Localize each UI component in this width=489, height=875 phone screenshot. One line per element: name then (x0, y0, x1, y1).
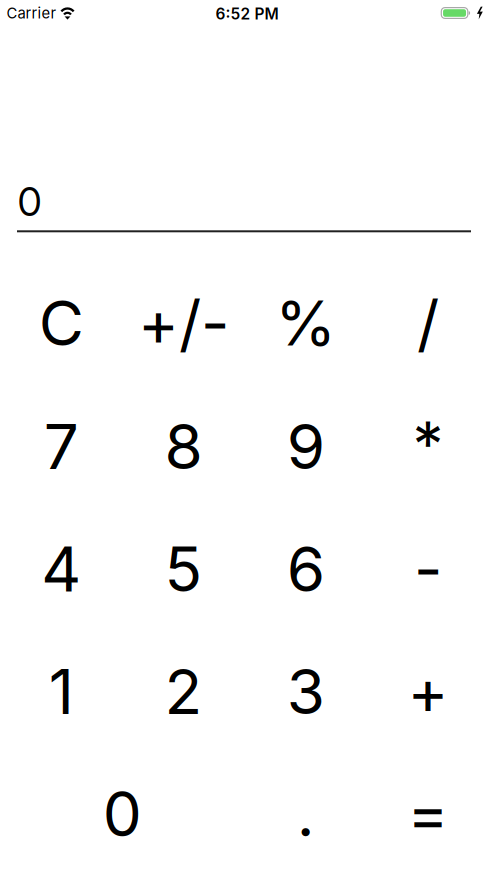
button[interactable]: 6 (244, 508, 367, 630)
button[interactable]: % (244, 262, 367, 384)
staticText: * (412, 406, 443, 481)
staticText: 0 (17, 178, 41, 226)
button[interactable]: . (244, 753, 367, 875)
staticText: 1 (49, 654, 74, 729)
staticText: - (414, 532, 442, 606)
staticText: . (297, 776, 315, 851)
button[interactable]: +/- (122, 262, 244, 384)
button[interactable]: 5 (122, 508, 244, 630)
button[interactable]: 2 (122, 630, 244, 753)
button[interactable]: - (367, 508, 489, 630)
button[interactable]: 3 (244, 630, 367, 753)
button[interactable]: 7 (0, 385, 122, 508)
staticText: 2 (164, 654, 202, 729)
staticText: 5 (164, 532, 202, 606)
button[interactable]: 1 (0, 630, 122, 753)
button[interactable]: / (367, 262, 489, 384)
staticText: 9 (287, 409, 325, 484)
button[interactable]: 8 (122, 385, 244, 508)
button[interactable]: = (367, 753, 489, 875)
staticText: = (407, 776, 448, 851)
staticText: % (275, 285, 336, 360)
button[interactable]: 4 (0, 508, 122, 630)
staticText: 6:52 PM (215, 4, 278, 23)
button[interactable]: 9 (244, 385, 367, 508)
staticText: +/- (138, 285, 229, 360)
staticText: 7 (44, 409, 79, 484)
staticText: 6 (287, 532, 325, 606)
staticText: Carrier (6, 4, 56, 22)
button[interactable]: 0 (0, 753, 244, 875)
staticText: / (417, 285, 439, 360)
button[interactable]: C (0, 262, 122, 384)
staticText: C (39, 285, 84, 360)
staticText: 0 (103, 776, 142, 851)
staticText: + (407, 654, 448, 729)
button[interactable]: * (367, 385, 489, 508)
button[interactable]: + (367, 630, 489, 753)
staticText: 8 (164, 409, 202, 484)
staticText: 3 (287, 654, 325, 729)
staticText: 4 (41, 532, 81, 606)
